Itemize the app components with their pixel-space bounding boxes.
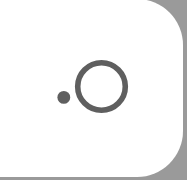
button[interactable]: Loading indicator [55, 58, 131, 116]
